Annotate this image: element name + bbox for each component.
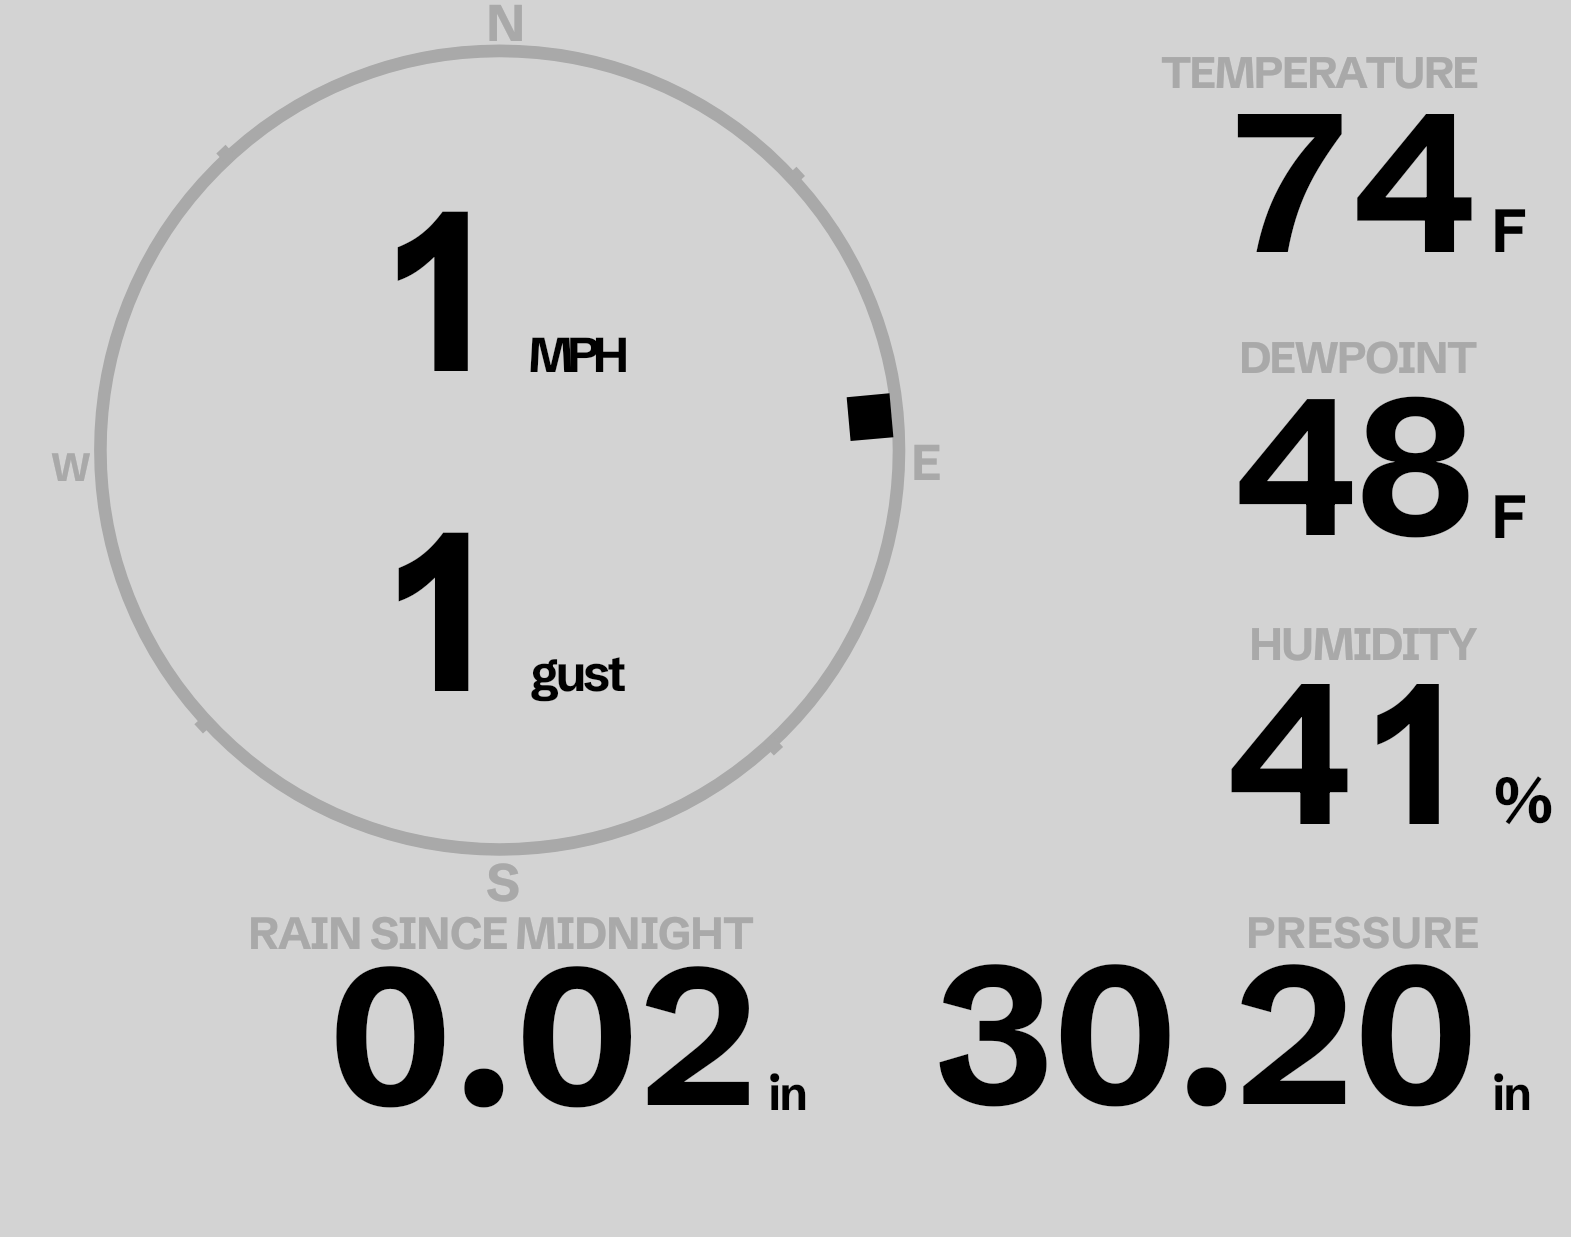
button[interactable]: Dewpoint 48 F bbox=[1130, 320, 1560, 550]
button[interactable]: Pressure 30.20 in bbox=[900, 900, 1540, 1120]
button[interactable]: Temperature 74 F bbox=[1130, 30, 1560, 270]
button[interactable]: Wind direction and speed bbox=[95, 45, 905, 855]
button[interactable]: Humidity 41 percent bbox=[1130, 600, 1560, 840]
button[interactable]: Rain since midnight 0.02 in bbox=[230, 900, 830, 1120]
